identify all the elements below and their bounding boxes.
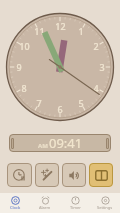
- button[interactable]: Clock: [0, 193, 30, 213]
- button[interactable]: Sound: [62, 163, 86, 187]
- button[interactable]: Split view: [89, 163, 113, 187]
- staticText: Alarm: [39, 205, 51, 210]
- staticText: 1: [78, 25, 84, 37]
- staticText: 6: [57, 103, 63, 115]
- staticText: Clock: [10, 205, 21, 210]
- staticText: 9: [16, 61, 22, 73]
- staticText: 7: [36, 97, 42, 109]
- button[interactable]: Timer: [7, 163, 32, 187]
- staticText: 8: [21, 82, 27, 94]
- staticText: 09:41: [49, 134, 83, 152]
- staticText: Settings: [97, 205, 113, 210]
- staticText: 4: [93, 82, 99, 94]
- staticText: AM: [38, 142, 48, 150]
- staticText: 10: [19, 40, 30, 52]
- button[interactable]: Alarm: [30, 193, 60, 213]
- staticText: 5: [78, 97, 84, 109]
- button[interactable]: Timer: [60, 193, 90, 213]
- staticText: 2: [93, 40, 99, 52]
- staticText: 11: [34, 25, 45, 37]
- staticText: 12: [55, 20, 66, 32]
- button[interactable]: AM: [9, 134, 111, 152]
- staticText: Timer: [70, 205, 81, 210]
- staticText: 3: [99, 61, 105, 73]
- button[interactable]: Effects: [35, 163, 59, 187]
- button[interactable]: Settings: [90, 193, 120, 213]
